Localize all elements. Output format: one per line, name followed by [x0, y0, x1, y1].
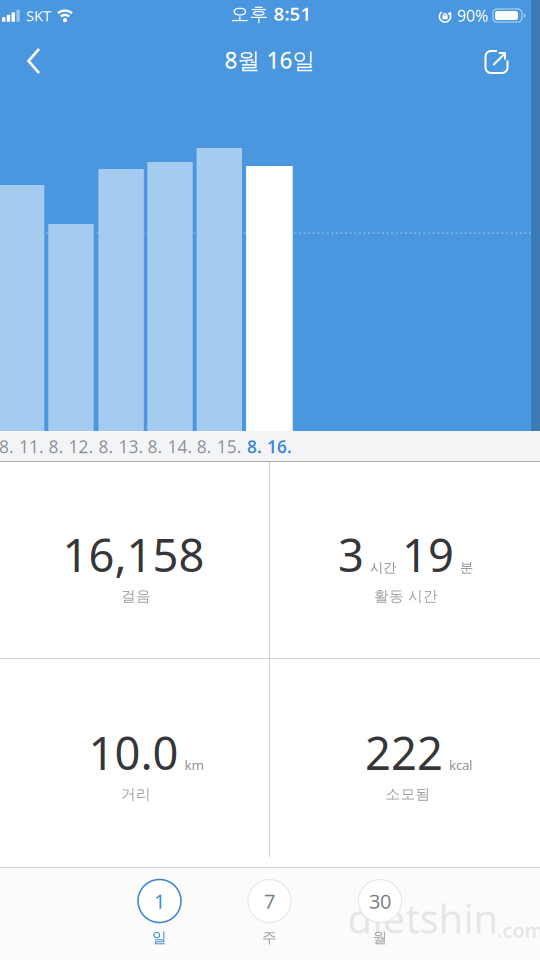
staticText: 8. 15.: [197, 435, 242, 458]
staticText: 8. 16.: [247, 435, 292, 458]
staticText: kcal: [449, 756, 472, 774]
staticText: 분: [460, 559, 473, 576]
staticText: 3: [338, 524, 364, 585]
button[interactable]: [483, 48, 510, 75]
staticText: 거리: [121, 785, 151, 803]
staticText: km: [184, 756, 203, 774]
staticText: 30: [369, 888, 391, 914]
staticText: 8. 14.: [147, 435, 192, 458]
staticText: 16,158: [62, 524, 204, 585]
button[interactable]: 8. 13.: [99, 435, 144, 458]
staticText: 소모됨: [385, 785, 430, 803]
button[interactable]: 7: [229, 875, 309, 951]
button[interactable]: [25, 46, 49, 76]
button[interactable]: 8. 11.: [0, 435, 44, 458]
button[interactable]: 8. 16.: [247, 435, 292, 458]
button[interactable]: 1: [119, 875, 199, 951]
staticText: 8. 13.: [99, 435, 144, 458]
staticText: 시간: [370, 559, 396, 576]
staticText: 19: [402, 524, 454, 585]
button[interactable]: 30: [340, 875, 420, 951]
staticText: 222: [365, 722, 443, 783]
staticText: 10.0: [88, 722, 178, 783]
staticText: .com: [496, 917, 540, 943]
staticText: 8. 11.: [0, 435, 44, 458]
staticText: 일: [152, 928, 167, 946]
staticText: 걸음: [121, 587, 151, 605]
staticText: 1: [154, 888, 165, 914]
staticText: SKT: [26, 6, 51, 25]
staticText: 90%: [457, 5, 488, 26]
button[interactable]: 8. 15.: [197, 435, 242, 458]
staticText: 8월 16일: [224, 45, 315, 75]
staticText: 7: [264, 888, 275, 914]
button[interactable]: 8. 14.: [147, 435, 192, 458]
staticText: 오후 8:51: [230, 1, 311, 26]
staticText: 주: [262, 928, 277, 946]
staticText: 월: [372, 928, 387, 946]
button[interactable]: 8. 12.: [48, 435, 93, 458]
staticText: 8. 12.: [48, 435, 93, 458]
staticText: 활동 시간: [374, 587, 438, 605]
staticText: dietshin: [347, 891, 498, 944]
